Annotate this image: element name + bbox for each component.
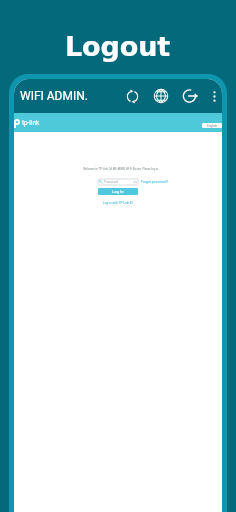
staticText: Welcome to TP-Link 1A MU-MIMO Wi-Fi Rout… bbox=[83, 167, 159, 170]
staticText: WIFI ADMIN. bbox=[20, 89, 88, 103]
button[interactable]: Log out bbox=[176, 82, 205, 110]
staticText: Password bbox=[104, 180, 119, 184]
staticText: Logout bbox=[65, 31, 171, 62]
button[interactable]: Refresh bbox=[118, 82, 146, 110]
button[interactable]: Log In bbox=[98, 188, 138, 195]
staticText: tp-link bbox=[22, 119, 40, 126]
staticText: Log In bbox=[112, 189, 124, 194]
button[interactable]: TP-Link home bbox=[14, 119, 20, 128]
button[interactable]: Log in with TP-Link ID bbox=[103, 201, 133, 205]
button[interactable]: Forgot password? bbox=[141, 180, 169, 184]
button[interactable]: Language selector bbox=[202, 123, 222, 128]
button[interactable]: Password bbox=[98, 179, 138, 185]
staticText: English bbox=[207, 124, 218, 128]
button[interactable]: More options bbox=[205, 82, 222, 110]
button[interactable]: Language bbox=[147, 82, 175, 110]
